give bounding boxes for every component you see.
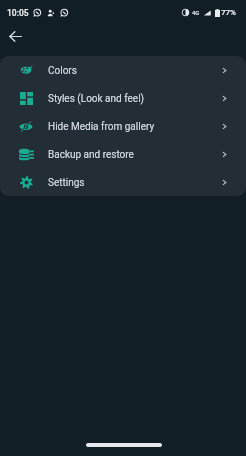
button[interactable]: Styles (Look and feel) bbox=[0, 84, 246, 112]
button[interactable]: Settings bbox=[0, 168, 246, 196]
button[interactable]: Back bbox=[2, 23, 29, 50]
staticText: Settings bbox=[48, 177, 85, 189]
button[interactable]: Hide Media from gallery bbox=[0, 112, 246, 140]
staticText: Styles (Look and feel) bbox=[48, 93, 145, 105]
staticText: Hide Media from gallery bbox=[48, 121, 155, 133]
staticText: Colors bbox=[48, 65, 77, 77]
staticText: 10:05 bbox=[7, 8, 29, 18]
button[interactable]: Colors bbox=[0, 56, 246, 84]
button[interactable]: Backup and restore bbox=[0, 140, 246, 168]
staticText: 77% bbox=[221, 8, 236, 17]
staticText: Backup and restore bbox=[48, 149, 134, 161]
staticText: 4G bbox=[192, 9, 200, 16]
